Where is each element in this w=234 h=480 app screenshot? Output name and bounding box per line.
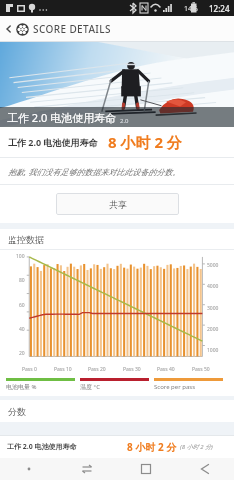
button[interactable]: Menu — [0, 458, 58, 480]
staticText: 60 — [19, 302, 25, 309]
staticText: 工作 2.0 电池使用寿命 — [7, 442, 77, 452]
staticText: 分数 — [8, 406, 26, 417]
staticText: 共享 — [109, 199, 127, 210]
staticText: 2.0 — [120, 117, 129, 125]
button[interactable]: Back to score details — [0, 22, 119, 36]
staticText: 40 — [19, 326, 25, 333]
staticText: 工作 2.0 电池使用寿命 — [8, 136, 98, 148]
staticText: 2000 — [207, 326, 219, 333]
staticText: Pass 20 — [88, 366, 106, 373]
staticText: 12:24 — [209, 3, 230, 14]
staticText: Pass 10 — [54, 366, 72, 373]
staticText: Pass 40 — [157, 366, 175, 373]
staticText: 8 小时 2 分 — [108, 132, 182, 152]
staticText: 100 — [16, 253, 25, 260]
button[interactable]: Home — [116, 458, 175, 480]
button[interactable]: Back — [175, 458, 234, 480]
button[interactable]: Recent apps — [58, 458, 116, 480]
staticText: 抱歉, 我们没有足够的数据来对比此设备的分数。 — [8, 166, 181, 177]
staticText: 工作 2.0 电池使用寿命 — [7, 110, 117, 125]
staticText: SCORE DETAILS — [33, 22, 111, 36]
staticText: 3000 — [207, 305, 219, 312]
staticText: 14% — [184, 4, 198, 14]
staticText: 监控数据 — [8, 234, 44, 245]
button[interactable]: 工作 2.0 电池使用寿命 — [0, 436, 234, 458]
staticText: 80 — [19, 277, 25, 284]
staticText: Score per pass — [154, 383, 196, 391]
staticText: Pass 30 — [123, 366, 141, 373]
button[interactable]: 共享 — [56, 193, 179, 215]
staticText: 温度 °C — [80, 383, 100, 391]
staticText: 电池电量 % — [6, 383, 37, 391]
staticText: Pass 50 — [192, 366, 210, 373]
staticText: (8 小时 2 分) — [180, 443, 213, 451]
staticText: Pass 0 — [22, 366, 37, 373]
staticText: 1000 — [207, 347, 219, 354]
staticText: 5000 — [207, 262, 219, 269]
staticText: 20 — [19, 350, 25, 357]
staticText: 4000 — [207, 283, 219, 290]
staticText: 8 小时 2 分 — [127, 440, 177, 454]
